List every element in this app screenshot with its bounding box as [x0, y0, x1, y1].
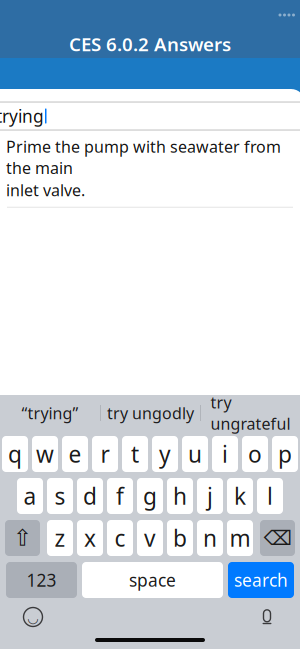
button[interactable]: u [182, 436, 208, 472]
button[interactable]: try ungrateful [201, 395, 300, 431]
button[interactable]: search [228, 562, 294, 598]
staticText: d [83, 481, 97, 511]
staticText: o [248, 439, 262, 469]
staticText: try ungodly [107, 402, 194, 424]
button[interactable]: n [197, 520, 223, 556]
button[interactable]: Dictate [252, 602, 282, 632]
staticText: h [173, 481, 187, 511]
button[interactable]: try ungodly [101, 395, 200, 431]
button[interactable]: l [257, 478, 283, 514]
button[interactable]: q [2, 436, 28, 472]
staticText: ⇧ [13, 525, 32, 551]
button[interactable]: g [137, 478, 163, 514]
staticText: u [188, 439, 202, 469]
button[interactable]: w [32, 436, 58, 472]
staticText: m [229, 523, 250, 553]
staticText: f [116, 481, 124, 511]
staticText: z [54, 523, 65, 553]
staticText: ◡ [27, 610, 39, 625]
staticText: “trying” [21, 402, 78, 424]
staticText: t [131, 439, 139, 469]
button[interactable]: c [107, 520, 133, 556]
button[interactable]: e [62, 436, 88, 472]
staticText: i [222, 439, 228, 469]
staticText: v [144, 523, 156, 553]
staticText: ⌫ [263, 527, 291, 549]
staticText: w [36, 439, 54, 469]
button[interactable]: p [272, 436, 298, 472]
staticText: b [173, 523, 187, 553]
staticText: g [143, 481, 157, 511]
staticText: search [234, 568, 288, 591]
staticText: c [114, 523, 125, 553]
staticText: q [8, 439, 22, 469]
staticText: CES 6.0.2 Answers [69, 32, 231, 56]
staticText: space [129, 568, 176, 591]
staticText: inlet valve. [6, 179, 85, 201]
staticText: l [267, 481, 273, 511]
button[interactable]: space [82, 562, 223, 598]
button[interactable]: h [167, 478, 193, 514]
button[interactable]: a [17, 478, 43, 514]
button[interactable]: Delete [260, 520, 295, 556]
staticText: 123 [26, 568, 56, 591]
staticText: while trying [0, 104, 44, 127]
button[interactable]: v [137, 520, 163, 556]
staticText: y [159, 439, 171, 469]
button[interactable]: x [77, 520, 103, 556]
staticText: try ungrateful [210, 392, 290, 434]
staticText: Prime the pump with seawater from the ma… [6, 136, 281, 178]
staticText: x [84, 523, 96, 553]
staticText: r [100, 439, 109, 469]
button[interactable]: k [227, 478, 253, 514]
staticText: j [207, 481, 213, 511]
staticText: n [203, 523, 217, 553]
button[interactable]: z [47, 520, 73, 556]
button[interactable]: while trying [0, 102, 300, 130]
button[interactable]: Emoji [18, 602, 48, 632]
button[interactable]: d [77, 478, 103, 514]
button[interactable]: 123 [6, 562, 77, 598]
button[interactable]: f [107, 478, 133, 514]
staticText: a [23, 481, 36, 511]
button[interactable]: r [92, 436, 118, 472]
button[interactable]: “trying” [0, 395, 100, 431]
button[interactable]: o [242, 436, 268, 472]
button[interactable]: j [197, 478, 223, 514]
button[interactable]: b [167, 520, 193, 556]
button[interactable]: i [212, 436, 238, 472]
button[interactable]: t [122, 436, 148, 472]
staticText: p [278, 439, 292, 469]
staticText: e [68, 439, 81, 469]
button[interactable]: y [152, 436, 178, 472]
button[interactable]: m [227, 520, 253, 556]
button[interactable]: Shift [5, 520, 40, 556]
staticText: k [234, 481, 246, 511]
button[interactable]: s [47, 478, 73, 514]
staticText: s [54, 481, 65, 511]
